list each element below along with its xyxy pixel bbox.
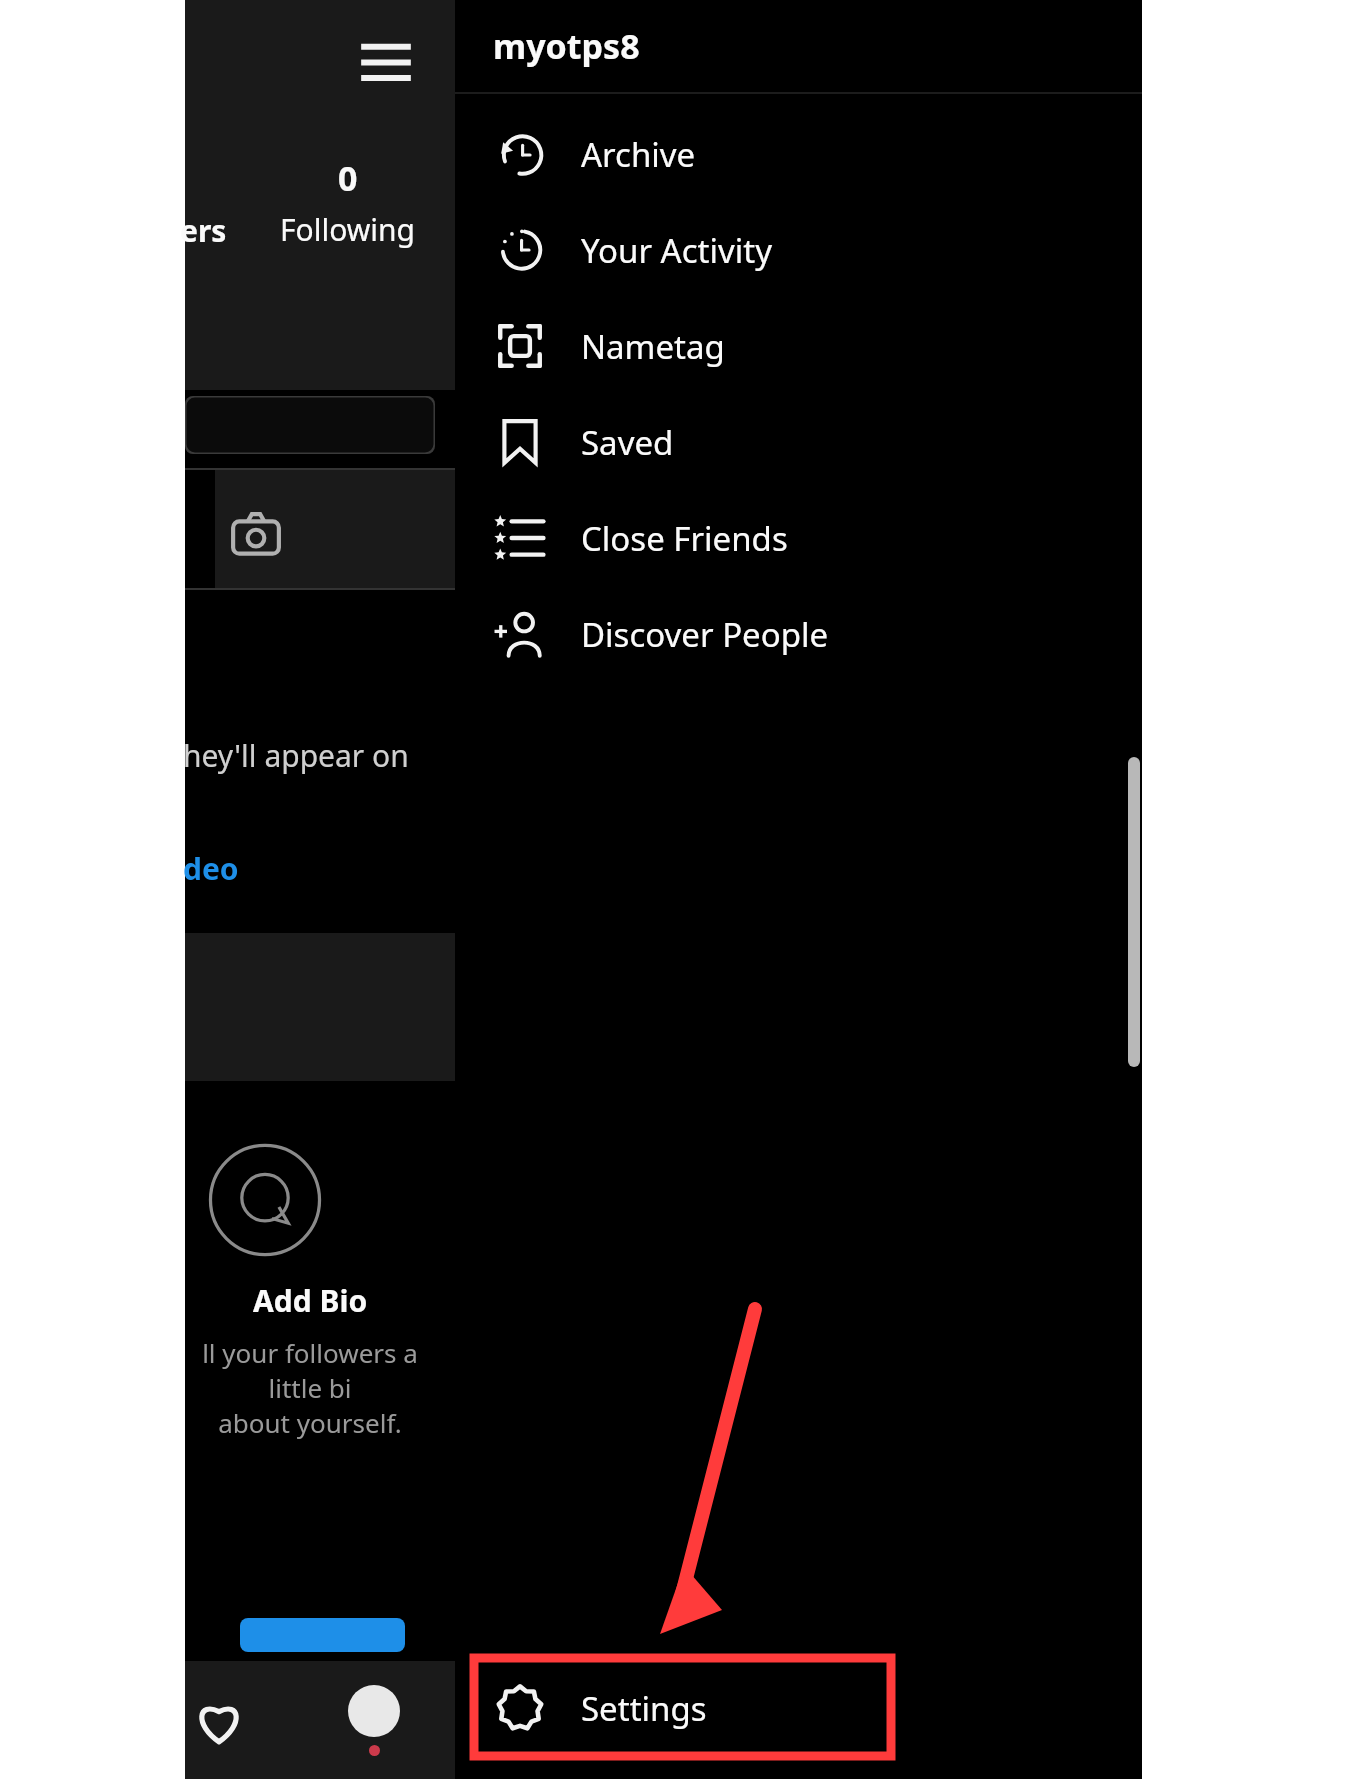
- staticText: hey'll appear on: [183, 735, 409, 776]
- button[interactable]: [240, 1618, 405, 1652]
- button[interactable]: Discover People: [455, 586, 1142, 682]
- button[interactable]: [205, 1140, 325, 1260]
- staticText: deo: [183, 848, 239, 889]
- staticText: Saved: [581, 420, 674, 465]
- staticText: Archive: [581, 132, 696, 177]
- staticText: Discover People: [581, 612, 829, 657]
- button[interactable]: Activity: [180, 1683, 258, 1761]
- staticText: Nametag: [581, 324, 725, 369]
- staticText: Your Activity: [581, 228, 772, 273]
- staticText: ll your followers a little bi: [175, 1335, 445, 1405]
- button[interactable]: myotps8: [455, 0, 1142, 92]
- button[interactable]: Saved: [455, 394, 1142, 490]
- button[interactable]: [225, 505, 287, 567]
- staticText: about yourself.: [175, 1405, 445, 1440]
- button[interactable]: Archive: [455, 106, 1142, 202]
- staticText: myotps8: [493, 23, 640, 69]
- staticText: Following: [280, 209, 416, 250]
- staticText: Close Friends: [581, 516, 788, 561]
- staticText: Add Bio: [253, 1280, 368, 1321]
- button[interactable]: Your Activity: [455, 202, 1142, 298]
- button[interactable]: Menu: [340, 18, 432, 110]
- button[interactable]: 0: [260, 155, 435, 250]
- button[interactable]: Close Friends: [455, 490, 1142, 586]
- staticText: Settings: [581, 1686, 707, 1731]
- button[interactable]: Settings: [455, 1653, 1142, 1763]
- button[interactable]: Profile: [335, 1681, 413, 1759]
- button[interactable]: Nametag: [455, 298, 1142, 394]
- staticText: 0: [338, 155, 358, 201]
- button[interactable]: [185, 396, 435, 454]
- staticText: ers: [180, 210, 227, 251]
